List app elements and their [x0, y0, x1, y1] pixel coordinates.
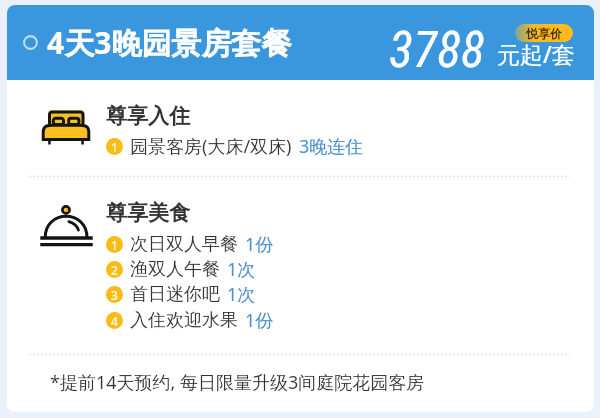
staticText: 首日迷你吧: [130, 283, 220, 306]
staticText: 次日双人早餐: [130, 233, 238, 256]
staticText: 渔双人午餐: [130, 258, 220, 281]
staticText: 1: [111, 139, 118, 155]
staticText: 3: [111, 287, 118, 303]
staticText: 1份: [245, 232, 274, 257]
staticText: 悦享价: [526, 26, 562, 41]
staticText: 1: [111, 237, 118, 253]
staticText: 元起/套: [497, 38, 575, 69]
staticText: 尊享美食: [106, 200, 190, 226]
button[interactable]: 4天3晚园景房套餐: [7, 5, 594, 80]
staticText: 1次: [227, 257, 256, 282]
staticText: 入住欢迎水果: [130, 309, 238, 332]
staticText: 园景客房(大床/双床): [130, 134, 292, 159]
staticText: 3788: [389, 21, 485, 80]
staticText: 4天3晚园景房套餐: [47, 22, 292, 63]
staticText: 3晚连住: [299, 134, 364, 159]
staticText: 2: [111, 262, 118, 278]
staticText: 4: [111, 313, 118, 329]
staticText: *提前14天预约, 每日限量升级3间庭院花园客房: [50, 370, 425, 395]
staticText: 尊享入住: [106, 103, 190, 129]
staticText: 1次: [227, 282, 256, 307]
staticText: 1份: [245, 308, 274, 333]
